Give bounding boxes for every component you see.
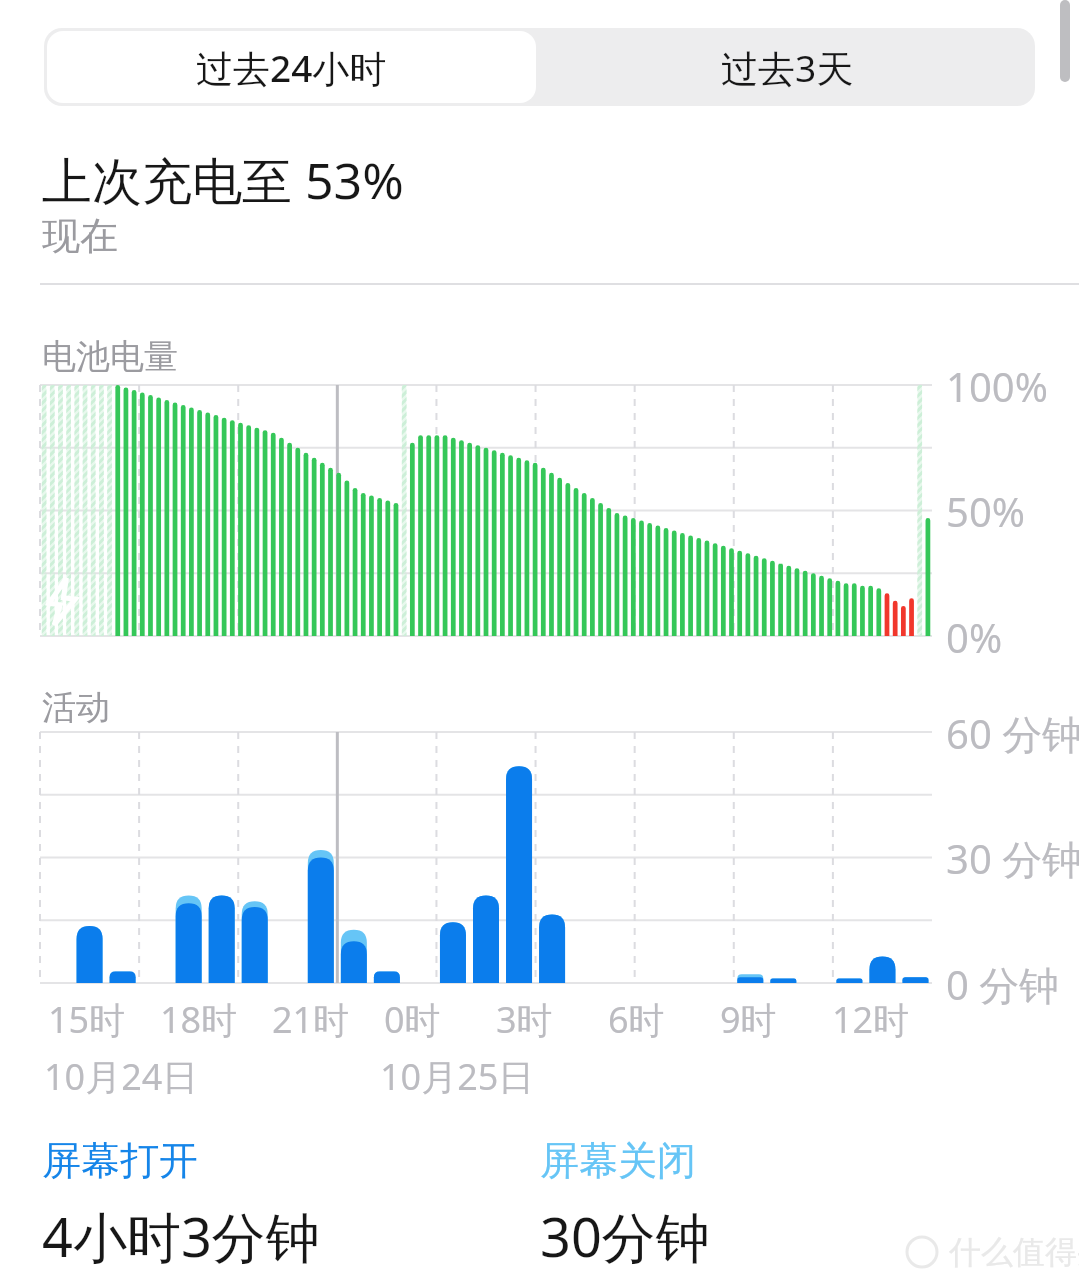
button[interactable]: 屏幕打开 xyxy=(42,1136,522,1273)
staticText: 屏幕关闭 xyxy=(540,1136,696,1185)
staticText: 60 分钟 xyxy=(946,706,1079,761)
staticText: 0 分钟 xyxy=(946,957,1060,1012)
staticText: 0% xyxy=(946,610,1003,664)
staticText: 屏幕打开 xyxy=(42,1136,198,1185)
staticText: 18时 xyxy=(160,995,238,1044)
staticText: 电池电量 xyxy=(42,335,178,378)
staticText: 30分钟 xyxy=(540,1199,710,1273)
staticText: 9时 xyxy=(720,995,777,1044)
staticText: 0时 xyxy=(384,995,441,1044)
staticText: 21时 xyxy=(272,995,350,1044)
staticText: 50% xyxy=(946,484,1025,538)
staticText: 30 分钟 xyxy=(946,831,1079,886)
staticText: 活动 xyxy=(42,686,110,729)
staticText: 过去24小时 xyxy=(196,42,387,93)
staticText: 上次充电至 53% xyxy=(42,146,404,214)
staticText: 6时 xyxy=(608,995,665,1044)
staticText: 12时 xyxy=(832,995,910,1044)
button[interactable]: 过去3天 xyxy=(539,28,1035,106)
staticText: 100% xyxy=(946,359,1048,413)
staticText: 过去3天 xyxy=(721,42,854,93)
staticText: 10月25日 xyxy=(380,1052,535,1101)
staticText: 4小时3分钟 xyxy=(42,1199,320,1273)
staticText: 15时 xyxy=(48,995,126,1044)
staticText: 3时 xyxy=(496,995,553,1044)
button[interactable]: 过去24小时 xyxy=(47,31,536,103)
staticText: 10月24日 xyxy=(44,1052,199,1101)
staticText: 现在 xyxy=(42,212,118,260)
button[interactable]: 屏幕关闭 xyxy=(540,1136,940,1273)
staticText: 什么值得买 xyxy=(949,1232,1079,1272)
